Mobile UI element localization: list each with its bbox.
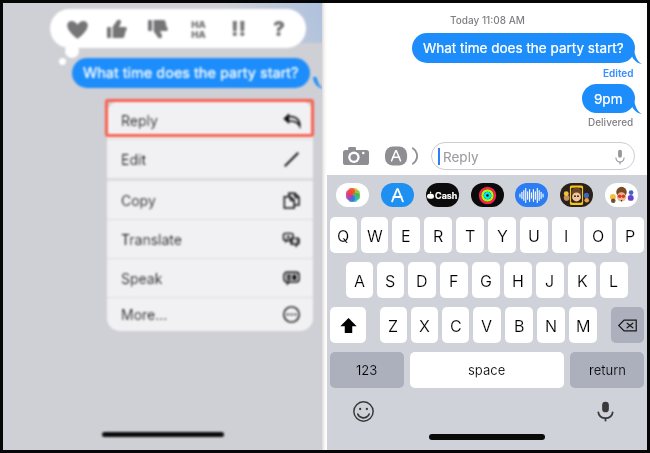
staticText: P bbox=[625, 226, 636, 245]
staticText: Edit bbox=[121, 151, 146, 168]
staticText: I bbox=[564, 226, 569, 245]
staticText: 123 bbox=[356, 362, 378, 378]
button[interactable]: C bbox=[442, 307, 469, 343]
staticText: O bbox=[592, 226, 605, 245]
staticText: L bbox=[609, 271, 619, 290]
button[interactable]: B bbox=[505, 307, 533, 343]
staticText: W bbox=[367, 226, 383, 245]
button[interactable]: V bbox=[473, 307, 501, 343]
button[interactable]: U bbox=[520, 217, 548, 253]
button[interactable]: Backspace bbox=[611, 307, 644, 343]
button[interactable]: App Store bbox=[381, 183, 414, 207]
button[interactable]: Shift bbox=[330, 307, 366, 343]
button[interactable]: Apple Cash bbox=[426, 183, 459, 207]
staticText: S bbox=[385, 271, 396, 290]
button[interactable]: Camera bbox=[343, 143, 369, 169]
button[interactable]: T bbox=[456, 217, 484, 253]
staticText: H bbox=[512, 271, 524, 290]
button[interactable]: Like bbox=[102, 12, 132, 46]
staticText: N bbox=[545, 316, 558, 335]
button[interactable]: Reply bbox=[107, 101, 313, 139]
button[interactable]: O bbox=[584, 217, 612, 253]
button[interactable]: Love bbox=[62, 12, 92, 46]
button[interactable]: R bbox=[424, 217, 452, 253]
button[interactable]: Dislike bbox=[143, 12, 173, 46]
button[interactable]: Y bbox=[488, 217, 516, 253]
button[interactable]: D bbox=[408, 262, 436, 298]
button[interactable]: J bbox=[536, 262, 564, 298]
button[interactable]: Haha bbox=[183, 12, 213, 46]
staticText: Q bbox=[337, 226, 350, 245]
staticText: A bbox=[354, 271, 366, 290]
button[interactable]: F bbox=[440, 262, 468, 298]
staticText: HA HA bbox=[191, 19, 206, 40]
staticText: V bbox=[481, 316, 493, 335]
staticText: Translate bbox=[121, 231, 182, 248]
button[interactable]: Photos bbox=[336, 183, 369, 207]
staticText: X bbox=[419, 316, 430, 335]
button[interactable]: Question bbox=[264, 12, 294, 46]
staticText: M bbox=[576, 316, 591, 335]
button[interactable]: Dictation bbox=[593, 399, 617, 423]
button[interactable]: Apps bbox=[385, 143, 415, 169]
button[interactable]: Translate bbox=[107, 220, 313, 258]
staticText: K bbox=[577, 271, 588, 290]
button[interactable]: H bbox=[504, 262, 532, 298]
staticText: Y bbox=[497, 226, 508, 245]
staticText: G bbox=[480, 271, 492, 290]
button[interactable]: More... bbox=[107, 298, 313, 331]
button[interactable]: space bbox=[410, 352, 564, 388]
button[interactable]: X bbox=[411, 307, 438, 343]
button[interactable]: Exclamation bbox=[224, 12, 254, 46]
staticText: Delivered bbox=[588, 116, 634, 128]
staticText: space bbox=[468, 362, 506, 378]
button[interactable]: Z bbox=[380, 307, 407, 343]
button[interactable]: G bbox=[472, 262, 500, 298]
staticText: 9pm bbox=[594, 91, 623, 107]
staticText: Z bbox=[388, 316, 399, 335]
staticText: R bbox=[433, 226, 444, 245]
button[interactable]: Q bbox=[330, 217, 357, 253]
button[interactable]: Speak bbox=[107, 259, 313, 297]
button[interactable]: Memoji bbox=[560, 183, 593, 207]
staticText: F bbox=[449, 271, 459, 290]
button[interactable]: return bbox=[570, 352, 644, 388]
staticText: What time does the party start? bbox=[83, 64, 299, 82]
button[interactable]: W bbox=[361, 217, 388, 253]
button[interactable]: Fitness bbox=[471, 183, 504, 207]
staticText: Speak bbox=[121, 270, 163, 287]
button[interactable]: Memoji 2 bbox=[605, 183, 638, 207]
button[interactable]: K bbox=[568, 262, 596, 298]
button[interactable]: A bbox=[346, 262, 373, 298]
button[interactable]: Copy bbox=[107, 181, 313, 219]
staticText: return bbox=[589, 362, 626, 378]
staticText: ? bbox=[273, 17, 286, 41]
staticText: What time does the party start? bbox=[423, 40, 624, 56]
button[interactable]: I bbox=[552, 217, 580, 253]
staticText: Today 11:08 AM bbox=[450, 14, 525, 26]
button[interactable]: L bbox=[600, 262, 628, 298]
button[interactable]: Emoji bbox=[351, 399, 375, 423]
staticText: Cash bbox=[435, 190, 458, 201]
button[interactable]: Reply bbox=[431, 142, 635, 170]
staticText: J bbox=[545, 271, 555, 290]
staticText: E bbox=[401, 226, 411, 245]
staticText: Reply bbox=[443, 149, 479, 165]
staticText: !! bbox=[231, 17, 247, 41]
button[interactable]: Edit bbox=[107, 140, 313, 178]
button[interactable]: Voice memo bbox=[515, 183, 548, 207]
staticText: Reply bbox=[121, 112, 158, 129]
staticText: D bbox=[416, 271, 428, 290]
staticText: Edited bbox=[603, 67, 634, 79]
button[interactable]: 123 bbox=[330, 352, 404, 388]
button[interactable]: N bbox=[537, 307, 565, 343]
button[interactable]: M bbox=[569, 307, 597, 343]
button[interactable]: P bbox=[616, 217, 644, 253]
button[interactable]: E bbox=[392, 217, 420, 253]
staticText: U bbox=[528, 226, 540, 245]
staticText: Copy bbox=[121, 192, 156, 209]
button[interactable]: S bbox=[377, 262, 404, 298]
staticText: More... bbox=[121, 306, 168, 323]
staticText: C bbox=[450, 316, 462, 335]
staticText: T bbox=[465, 226, 476, 245]
